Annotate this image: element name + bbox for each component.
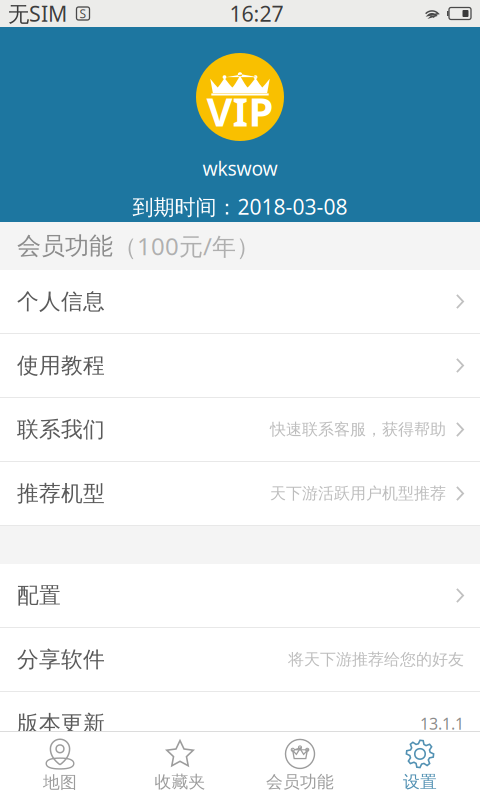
button[interactable]: 个人信息	[0, 270, 480, 334]
staticText: 会员功能	[17, 231, 113, 261]
staticText: 收藏夹	[154, 771, 205, 793]
staticText: 将天下游推荐给您的好友	[288, 649, 464, 670]
staticText: 13.1.1	[420, 713, 464, 734]
button[interactable]: 收藏夹	[120, 732, 240, 800]
button[interactable]: 设置	[360, 732, 480, 800]
staticText: 联系我们	[17, 416, 105, 443]
staticText: wkswow	[202, 155, 277, 181]
staticText: 配置	[17, 582, 61, 609]
staticText: 地图	[43, 772, 77, 793]
button[interactable]: 分享软件	[0, 628, 480, 692]
staticText: 版本更新	[17, 710, 105, 737]
staticText: 设置	[403, 771, 437, 793]
staticText: S	[79, 5, 86, 21]
button[interactable]: 推荐机型	[0, 462, 480, 526]
button[interactable]: 配置	[0, 564, 480, 628]
staticText: 到期时间：2018-03-08	[132, 192, 347, 221]
staticText: （100元/年）	[113, 230, 260, 262]
staticText: 会员功能	[266, 771, 334, 793]
staticText: 个人信息	[17, 288, 105, 315]
button[interactable]: 版本更新	[0, 692, 480, 756]
staticText: 推荐机型	[17, 480, 105, 507]
staticText: 使用教程	[17, 352, 105, 379]
staticText: 天下游活跃用户机型推荐	[270, 483, 446, 504]
staticText: 快速联系客服，获得帮助	[270, 419, 446, 440]
staticText: 无SIM	[8, 0, 67, 28]
button[interactable]: 使用教程	[0, 334, 480, 398]
button[interactable]: 联系我们	[0, 398, 480, 462]
staticText: 16:27	[229, 0, 283, 28]
button[interactable]: 地图	[0, 732, 120, 800]
staticText: 分享软件	[17, 646, 105, 673]
button[interactable]: 会员功能	[240, 732, 360, 800]
staticText: VIP	[206, 84, 273, 138]
